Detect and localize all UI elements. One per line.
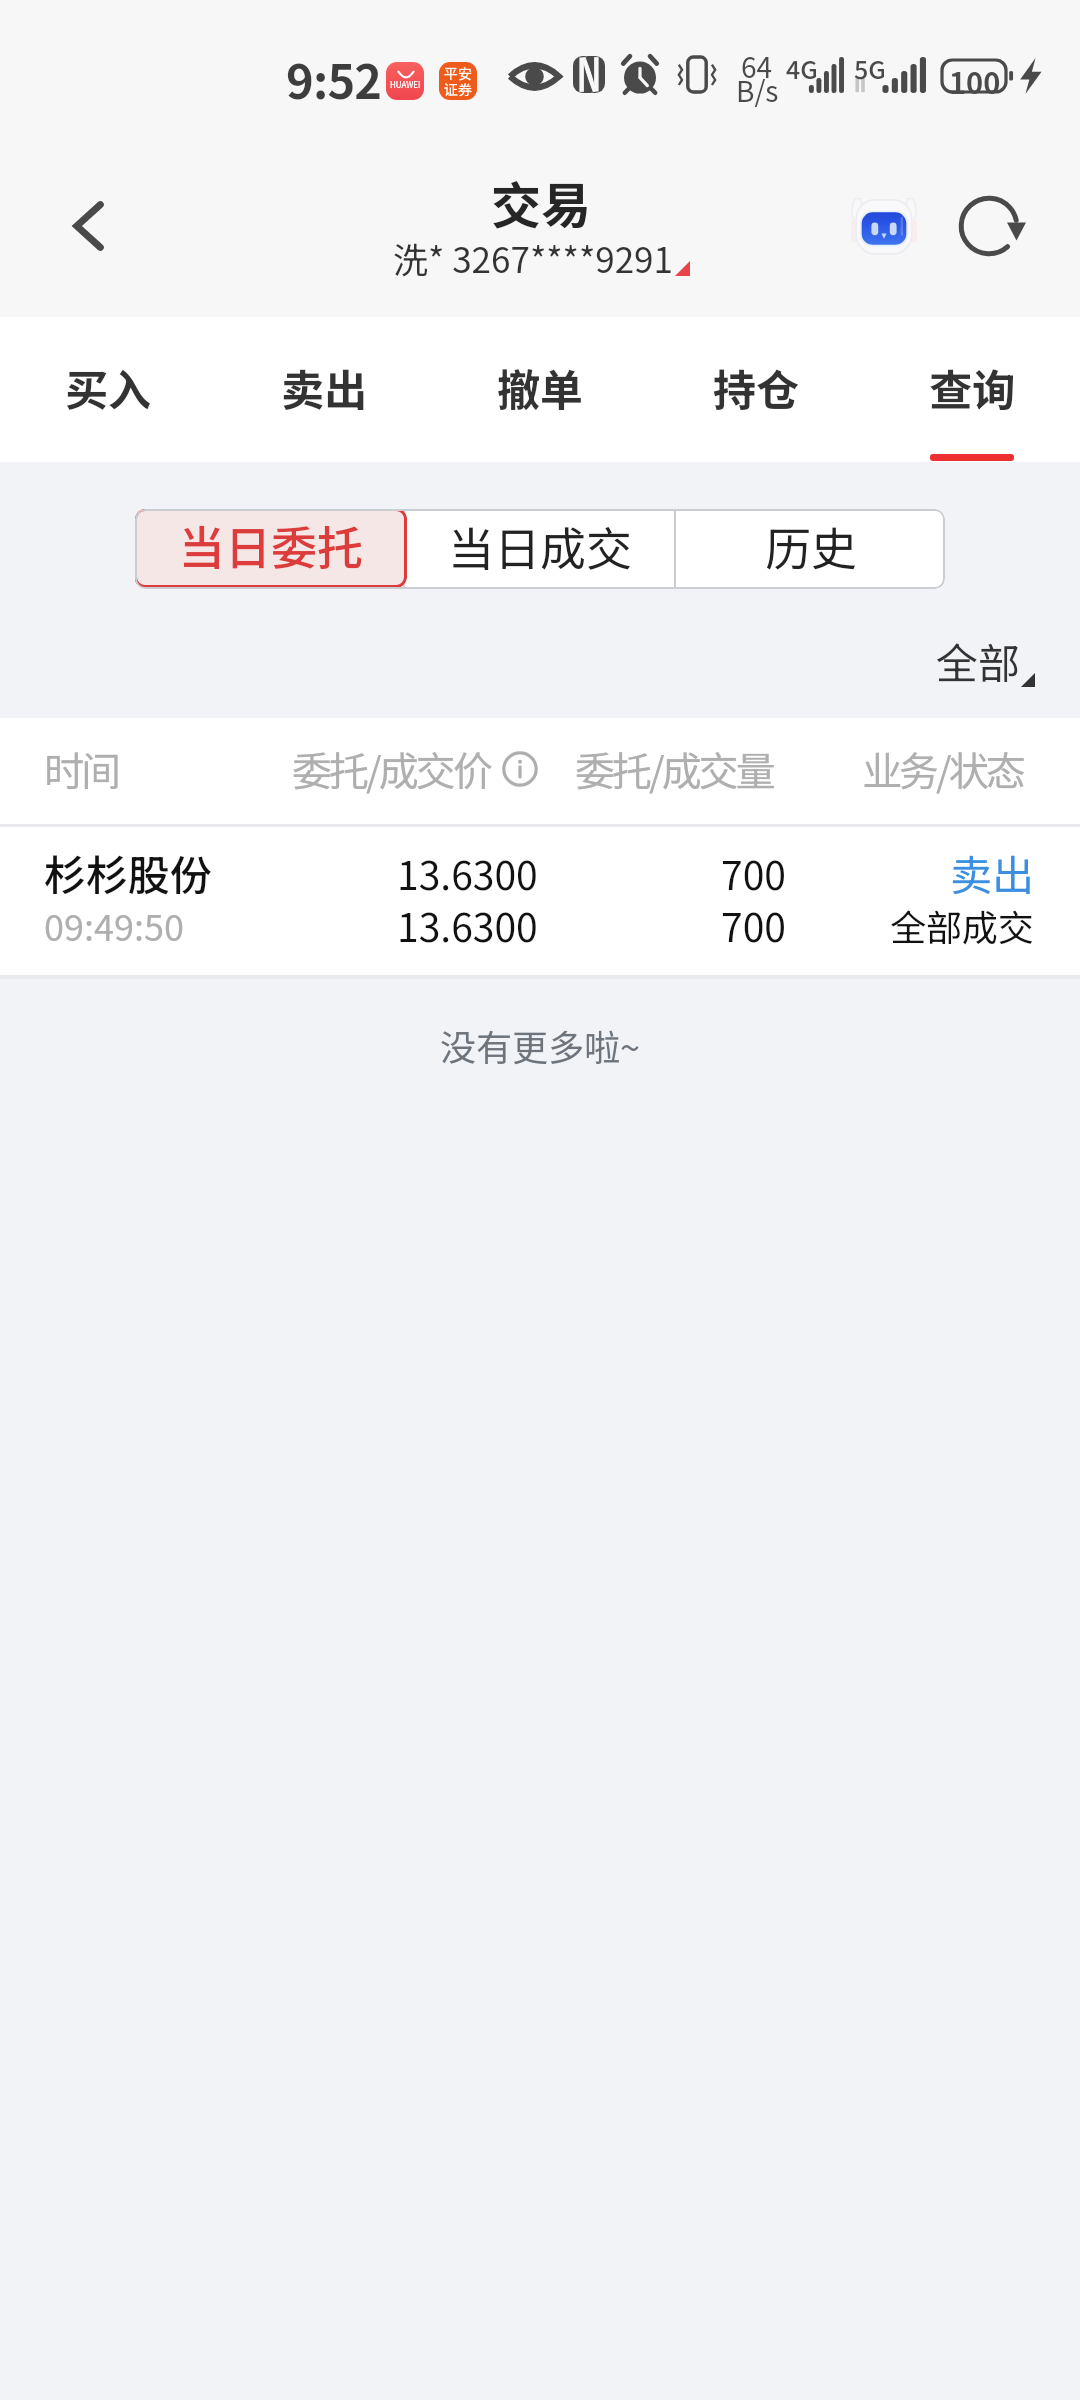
staticText: 持仓 (713, 356, 799, 418)
staticText: 9:52 (286, 44, 382, 112)
staticText: 700 (721, 897, 786, 953)
staticText: 100 (949, 60, 1001, 102)
staticText: 卖出 (950, 842, 1035, 903)
staticText: 历史 (765, 513, 857, 580)
staticText: 全部成交 (890, 899, 1035, 951)
staticText: 13.6300 (397, 845, 538, 901)
staticText: 委托/成交价 (292, 740, 490, 798)
staticText: 卖出 (281, 356, 367, 418)
staticText: 委托/成交量 (575, 740, 773, 798)
staticText: B/s (736, 70, 779, 111)
staticText: 5G (854, 50, 886, 86)
staticText: 全部 (936, 630, 1021, 691)
staticText: 没有更多啦~ (440, 1019, 640, 1071)
staticText: 平安 证券 (444, 63, 472, 99)
button[interactable]: 全部 (936, 630, 1035, 691)
button[interactable]: Price info (502, 751, 538, 787)
button[interactable]: Refresh (947, 181, 1037, 271)
staticText: 700 (721, 845, 786, 901)
staticText: 查询 (929, 356, 1015, 418)
staticText: HUAWEI (390, 79, 421, 91)
button[interactable]: 历史 (676, 509, 945, 589)
button[interactable] (135, 509, 403, 589)
staticText: 13.6300 (397, 897, 538, 953)
button[interactable]: 查询 (864, 317, 1080, 462)
staticText: 当日成交 (448, 513, 632, 580)
button[interactable]: Back (0, 142, 170, 309)
staticText: 交易 (491, 166, 591, 238)
staticText: 09:49:50 (44, 899, 184, 951)
button[interactable]: 当日成交 (405, 509, 674, 589)
button[interactable]: 买入 (0, 317, 216, 462)
button[interactable]: 卖出 (216, 317, 432, 462)
button[interactable]: AI assistant (839, 181, 929, 271)
staticText: 杉杉股份 (44, 842, 213, 903)
staticText: 洗* 3267****9291 (393, 232, 673, 283)
button[interactable]: 持仓 (648, 317, 864, 462)
staticText: 64 (741, 46, 773, 87)
staticText: 撤单 (497, 356, 583, 418)
staticText: 时间 (44, 740, 118, 798)
button[interactable]: 杉杉股份 (0, 827, 1080, 975)
staticText: 业务/状态 (862, 740, 1023, 798)
staticText: 4G (786, 50, 818, 86)
button[interactable]: 当日委托 (135, 509, 407, 588)
button[interactable]: 撤单 (432, 317, 648, 462)
staticText: 买入 (65, 356, 151, 418)
staticText: 当日委托 (179, 512, 363, 579)
